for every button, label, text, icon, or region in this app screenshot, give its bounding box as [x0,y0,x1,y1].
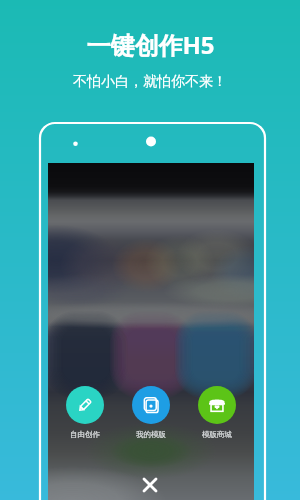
staticText: 我的模版 [136,430,166,439]
staticText: 自由创作 [70,430,100,439]
staticText: 模版商城 [202,430,232,439]
button[interactable]: 自由创作 [52,386,118,439]
staticText: 一键创作H5 [86,28,215,61]
button[interactable]: 我的模版 [118,386,184,439]
staticText: 不怕小白，就怕你不来！ [73,73,227,91]
button[interactable]: Close [136,471,164,499]
button[interactable]: 模版商城 [184,386,250,439]
